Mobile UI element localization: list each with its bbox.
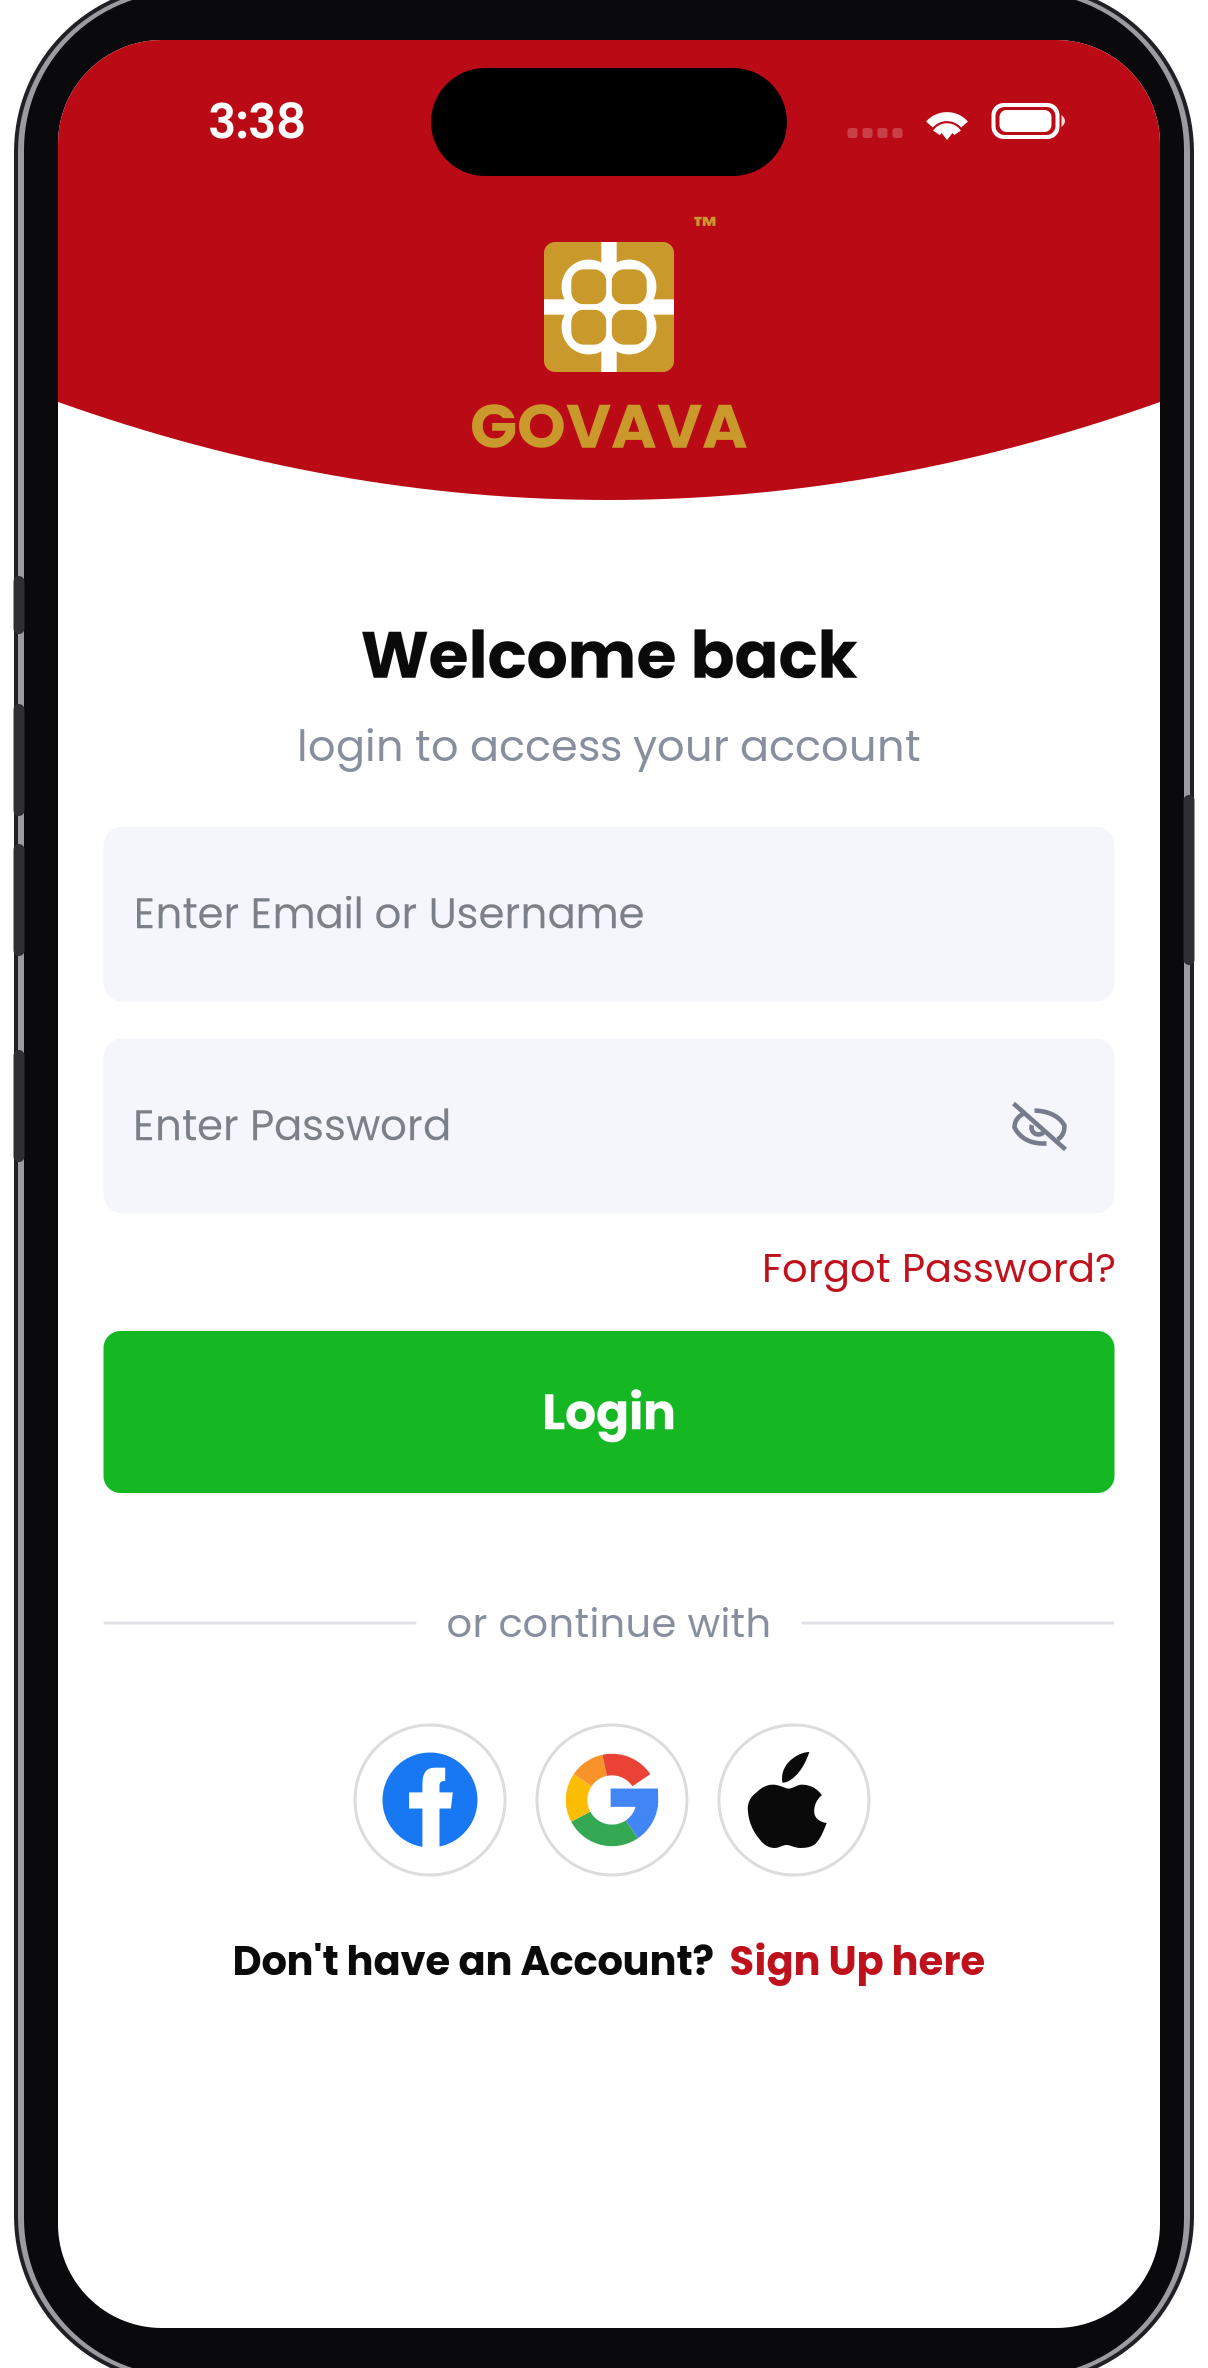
staticText: GOVAVA <box>470 383 748 469</box>
button[interactable]: Continue with Apple <box>717 1723 870 1876</box>
button[interactable]: Continue with Facebook <box>353 1723 506 1876</box>
staticText: 3:38 <box>208 89 306 155</box>
staticText: Enter Email or Username <box>133 884 644 943</box>
staticText: Sign Up here <box>729 1933 985 1989</box>
staticText: Don't have an Account? <box>232 1933 714 1989</box>
staticText: ™ <box>693 208 716 244</box>
button[interactable]: Don't have an Account? <box>232 1927 985 1995</box>
staticText: Welcome back <box>360 609 857 700</box>
button[interactable]: Enter Email or Username <box>103 826 1114 1001</box>
staticText: login to access your account <box>297 716 921 776</box>
button[interactable]: Continue with Google <box>535 1723 688 1876</box>
button[interactable]: Enter Password <box>103 1038 1114 1213</box>
staticText: Forgot Password? <box>762 1240 1116 1296</box>
button[interactable]: Login <box>103 1331 1114 1493</box>
staticText: Login <box>542 1378 676 1446</box>
staticText: or continue with <box>446 1595 771 1651</box>
button[interactable]: Forgot Password? <box>756 1240 1122 1296</box>
staticText: Enter Password <box>133 1096 451 1155</box>
